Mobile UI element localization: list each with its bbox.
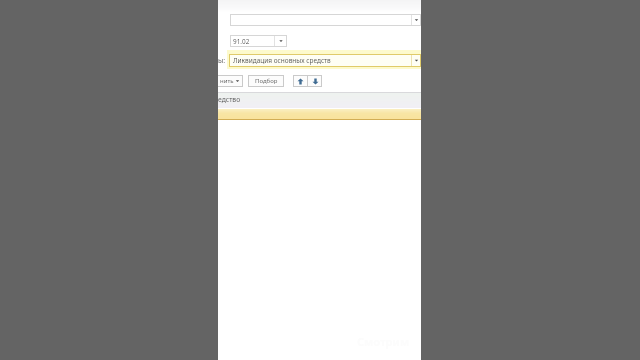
button[interactable]: Подбор <box>248 75 284 87</box>
staticText: ы: <box>218 56 226 66</box>
button[interactable]: нить <box>218 75 243 87</box>
button[interactable]: Move down <box>308 75 322 87</box>
button[interactable]: 91.02 <box>230 35 287 47</box>
staticText: нить <box>220 77 234 85</box>
staticText: 91.02 <box>233 37 250 46</box>
button[interactable]: Move up <box>293 75 307 87</box>
staticText: Подбор <box>255 77 278 85</box>
button[interactable]: Select value <box>230 14 421 26</box>
button[interactable]: едство <box>218 93 421 108</box>
staticText: Ликвидация основных средств <box>233 56 331 65</box>
staticText: едство <box>218 95 241 104</box>
button[interactable] <box>218 109 421 120</box>
button[interactable]: Ликвидация основных средств <box>229 54 421 67</box>
